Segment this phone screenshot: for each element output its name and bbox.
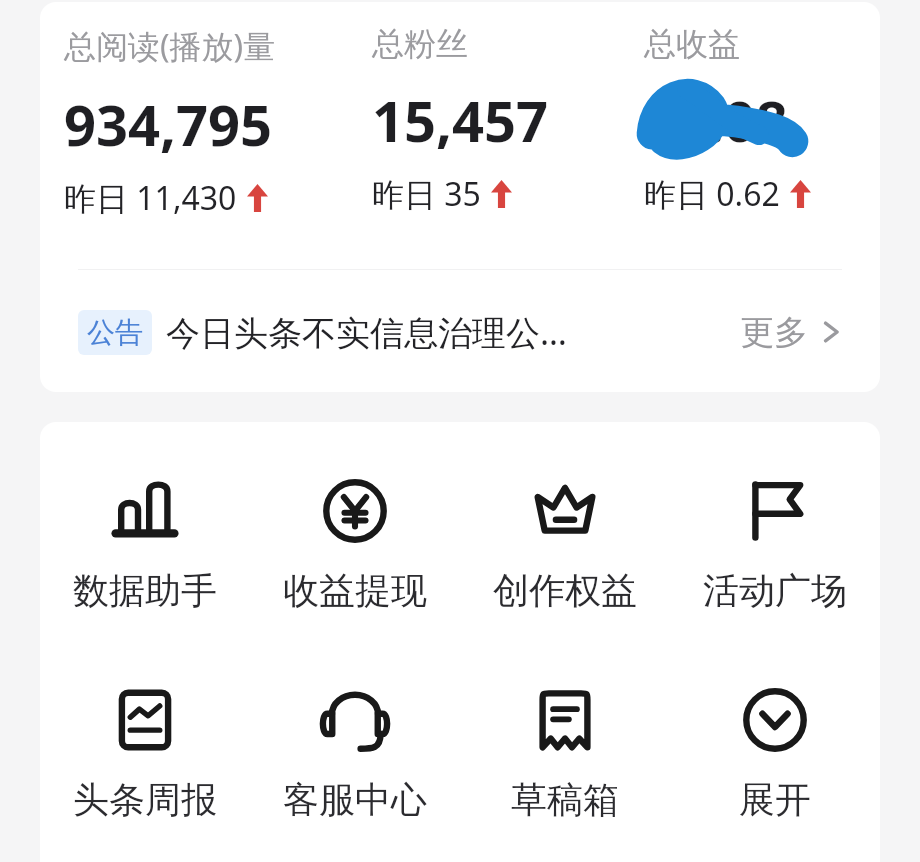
staticText: 头条周报 [73,777,217,822]
staticText: 收益提现 [283,568,427,613]
button[interactable]: 总阅读(播放)量 [64,24,352,220]
staticText: 今日头条不实信息治理公… [166,309,567,355]
staticText: 客服中心 [283,777,427,822]
staticText: 总粉丝 [372,24,468,64]
staticText: 活动广场 [703,568,847,613]
staticText: 总收益 [644,24,740,64]
staticText: 展开 [739,777,811,822]
button[interactable]: 草稿箱 [460,685,670,822]
button[interactable]: 客服中心 [250,685,460,822]
button[interactable]: 展开 [670,685,880,822]
staticText: 更多 [740,311,808,354]
staticText: 创作权益 [493,568,637,613]
staticText: 15,457 [372,82,549,158]
staticText: 昨日 35 [372,172,481,216]
staticText: 数据助手 [73,568,217,613]
staticText: 昨日 0.62 [644,172,780,216]
staticText: 934,795 [64,86,273,162]
staticText: 26.08 [644,82,788,158]
other: More [820,315,842,349]
staticText: 草稿箱 [511,777,619,822]
button[interactable]: 公告 [40,292,880,372]
button[interactable]: 活动广场 [670,476,880,613]
button[interactable]: 总收益 [644,24,874,216]
button[interactable]: 收益提现 [250,476,460,613]
button[interactable]: 创作权益 [460,476,670,613]
staticText: 总阅读(播放)量 [64,24,276,68]
button[interactable]: 数据助手 [40,476,250,613]
staticText: 公告 [87,315,143,350]
button[interactable]: 头条周报 [40,685,250,822]
staticText: 昨日 11,430 [64,176,237,220]
button[interactable]: 总粉丝 [372,24,624,216]
